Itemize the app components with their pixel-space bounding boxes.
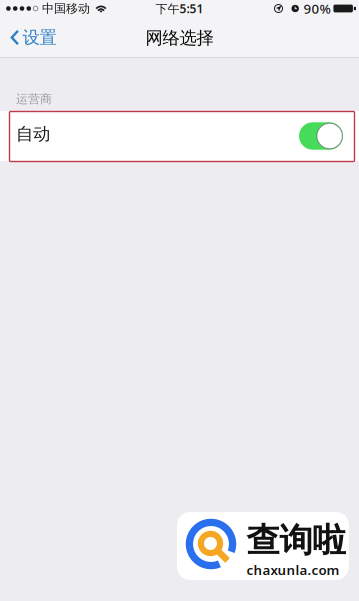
- staticText: 运营商: [16, 92, 52, 106]
- staticText: 设置: [23, 27, 57, 48]
- button[interactable]: 自动: [0, 111, 359, 161]
- button[interactable]: 设置: [0, 18, 67, 57]
- staticText: 中国移动: [42, 1, 90, 16]
- staticText: 网络选择: [145, 27, 213, 49]
- staticText: chaxunla.com: [246, 561, 339, 579]
- staticText: 下午5:51: [155, 0, 203, 16]
- staticText: 90%: [303, 0, 330, 17]
- staticText: 自动: [16, 123, 50, 145]
- staticText: 查询啦: [246, 520, 345, 561]
